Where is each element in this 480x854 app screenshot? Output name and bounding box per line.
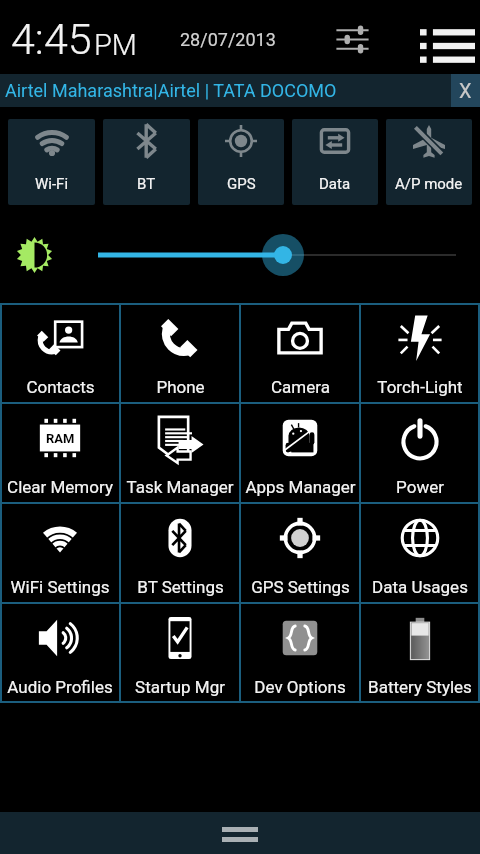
button[interactable]: BT [103,119,190,205]
staticText: BT [137,175,156,193]
staticText: Camera [271,377,330,397]
staticText: 4:45 [11,14,92,64]
button[interactable]: A/P mode [386,119,472,205]
button[interactable]: Audio Profiles [0,603,120,703]
button[interactable]: Auto brightness [10,230,60,280]
button[interactable]: WiFi Settings [0,503,120,603]
staticText: BT Settings [137,577,224,597]
button[interactable]: Power [360,403,480,503]
button[interactable]: Close carrier notice [451,74,480,107]
staticText: WiFi Settings [10,577,110,597]
button[interactable]: Apps Manager [240,403,360,503]
staticText: Data [319,175,351,193]
staticText: Audio Profiles [7,677,113,697]
staticText: Contacts [26,377,95,397]
button[interactable]: Dev Options [240,603,360,703]
button[interactable]: Wi-Fi [8,119,95,205]
staticText: 28/07/2013 [180,29,276,50]
staticText: GPS [227,175,256,193]
staticText: Wi-Fi [35,175,69,193]
button[interactable]: Camera [240,303,360,403]
button[interactable]: GPS Settings [240,503,360,603]
staticText: Task Manager [126,477,234,497]
button[interactable]: Data Usages [360,503,480,603]
staticText: Dev Options [254,677,346,697]
button[interactable]: RAM [0,403,120,503]
button[interactable]: GPS [198,119,284,205]
button[interactable]: Contacts [0,303,120,403]
staticText: A/P mode [395,175,463,193]
staticText: RAM [46,431,75,446]
staticText: Battery Styles [368,677,472,697]
button[interactable]: Data [292,119,378,205]
button[interactable]: Quick settings [326,13,379,66]
staticText: Torch-Light [377,377,463,397]
staticText: Airtel Maharashtra|Airtel | TATA DOCOMO [5,80,337,101]
button[interactable]: Torch-Light [360,303,480,403]
staticText: Power [396,477,444,497]
staticText: Data Usages [372,577,468,597]
staticText: GPS Settings [251,577,350,597]
staticText: Apps Manager [245,477,356,497]
staticText: Clear Memory [7,477,113,497]
button[interactable]: Brightness slider [70,230,470,280]
button[interactable]: Phone [120,303,240,403]
staticText: PM [94,28,137,62]
staticText: Startup Mgr [135,677,225,697]
button[interactable]: Close notification panel [0,812,480,854]
button[interactable]: Task Manager [120,403,240,503]
staticText: X [459,79,472,102]
button[interactable]: Startup Mgr [120,603,240,703]
button[interactable]: Battery Styles [360,603,480,703]
button[interactable]: BT Settings [120,503,240,603]
button[interactable]: Notification list [415,13,480,78]
staticText: Phone [156,377,205,397]
